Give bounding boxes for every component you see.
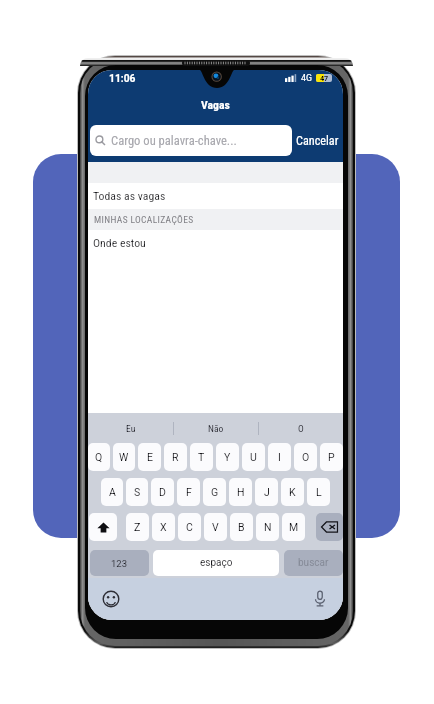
staticText: Não <box>208 423 224 434</box>
button[interactable]: E <box>138 443 161 471</box>
button[interactable]: Cargo ou palavra-chave... <box>90 125 292 156</box>
button[interactable]: G <box>203 478 226 506</box>
staticText: Y <box>224 451 231 463</box>
button[interactable]: Q <box>88 443 110 471</box>
staticText: K <box>289 486 296 498</box>
button[interactable]: Todas as vagas <box>88 183 343 209</box>
button[interactable]: Y <box>216 443 239 471</box>
staticText: Onde estou <box>93 236 146 250</box>
staticText: buscar <box>298 557 329 569</box>
button[interactable]: Shift <box>89 513 117 541</box>
button[interactable]: K <box>281 478 304 506</box>
button[interactable]: W <box>113 443 135 471</box>
button[interactable]: M <box>282 513 305 541</box>
button[interactable]: R <box>164 443 187 471</box>
button[interactable]: V <box>204 513 227 541</box>
staticText: D <box>159 486 166 498</box>
button[interactable]: P <box>320 443 343 471</box>
button[interactable]: espaço <box>153 550 279 576</box>
button[interactable]: I <box>268 443 291 471</box>
staticText: X <box>160 521 167 533</box>
button[interactable]: S <box>126 478 148 506</box>
staticText: 4G <box>301 73 312 83</box>
button[interactable]: A <box>101 478 123 506</box>
staticText: B <box>238 521 245 533</box>
staticText: O <box>302 451 310 463</box>
staticText: Vagas <box>201 98 230 112</box>
staticText: 11:06 <box>109 72 136 84</box>
staticText: 47 <box>320 74 329 82</box>
staticText: Todas as vagas <box>93 189 166 203</box>
button[interactable]: H <box>229 478 252 506</box>
button[interactable]: Cancelar <box>292 125 343 156</box>
staticText: Z <box>134 521 141 533</box>
button[interactable]: C <box>178 513 201 541</box>
button[interactable]: J <box>255 478 278 506</box>
button[interactable]: L <box>307 478 330 506</box>
button[interactable]: buscar <box>284 550 343 576</box>
staticText: V <box>212 521 219 533</box>
staticText: 123 <box>111 558 128 569</box>
staticText: N <box>264 521 272 533</box>
staticText: R <box>172 451 179 463</box>
button[interactable]: 123 <box>90 550 149 576</box>
staticText: A <box>109 486 116 498</box>
button[interactable]: U <box>242 443 265 471</box>
staticText: C <box>186 521 193 533</box>
staticText: O <box>298 423 304 434</box>
button[interactable]: Z <box>126 513 149 541</box>
button[interactable]: Onde estou <box>88 230 343 256</box>
button[interactable]: O <box>294 443 317 471</box>
staticText: G <box>211 486 219 498</box>
button[interactable]: D <box>151 478 174 506</box>
button[interactable]: F <box>177 478 200 506</box>
staticText: W <box>119 451 129 463</box>
staticText: L <box>316 486 322 498</box>
staticText: Cancelar <box>296 134 339 148</box>
staticText: Eu <box>126 423 136 434</box>
button[interactable]: X <box>152 513 175 541</box>
staticText: M <box>289 521 299 533</box>
staticText: U <box>250 451 257 463</box>
staticText: S <box>134 486 141 498</box>
button[interactable]: Emoji <box>100 588 122 610</box>
staticText: Q <box>95 451 103 463</box>
button[interactable]: B <box>230 513 253 541</box>
staticText: E <box>147 451 153 463</box>
button[interactable]: O <box>259 413 343 443</box>
button[interactable]: Eu <box>88 413 173 443</box>
button[interactable]: Voice input <box>309 588 331 610</box>
staticText: MINHAS LOCALIZAÇÕES <box>94 214 194 225</box>
staticText: T <box>198 451 205 463</box>
staticText: Cargo ou palavra-chave... <box>111 133 237 148</box>
staticText: H <box>237 486 245 498</box>
staticText: P <box>328 451 335 463</box>
button[interactable]: Backspace <box>316 513 343 541</box>
button[interactable]: T <box>190 443 213 471</box>
staticText: J <box>264 486 270 498</box>
staticText: espaço <box>200 557 233 569</box>
staticText: I <box>278 451 281 463</box>
button[interactable]: N <box>256 513 279 541</box>
button[interactable]: Não <box>174 413 258 443</box>
staticText: F <box>186 486 192 498</box>
